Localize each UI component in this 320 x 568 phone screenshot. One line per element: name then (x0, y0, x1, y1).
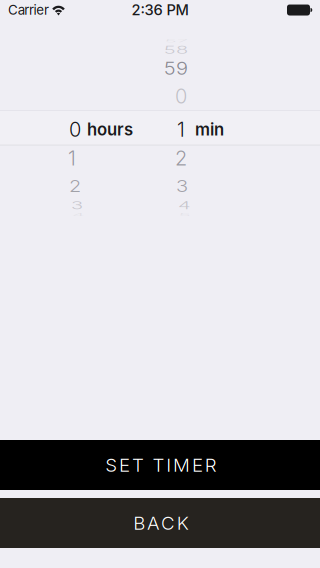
staticText: 0 (175, 84, 187, 109)
staticText: SET TIMER (105, 454, 217, 476)
staticText: 2 (69, 174, 81, 198)
staticText: 4 (178, 193, 191, 218)
button[interactable]: SET TIMER (0, 440, 320, 490)
staticText: hours (87, 119, 133, 140)
staticText: 2:36 PM (131, 1, 188, 19)
staticText: 2 (175, 146, 187, 171)
staticText: 4 (72, 203, 85, 227)
staticText: 1 (68, 146, 76, 171)
staticText: BACK (133, 512, 189, 534)
staticText: 3 (71, 193, 83, 218)
staticText: 57 (165, 29, 188, 53)
staticText: 5 (179, 203, 191, 227)
staticText: 1 (177, 117, 185, 142)
staticText: Carrier (8, 2, 48, 18)
staticText: 3 (176, 174, 188, 198)
staticText: min (195, 119, 224, 140)
staticText: 58 (164, 38, 188, 62)
staticText: 0 (69, 117, 81, 142)
staticText: 59 (164, 56, 188, 81)
button[interactable]: BACK (0, 498, 320, 548)
